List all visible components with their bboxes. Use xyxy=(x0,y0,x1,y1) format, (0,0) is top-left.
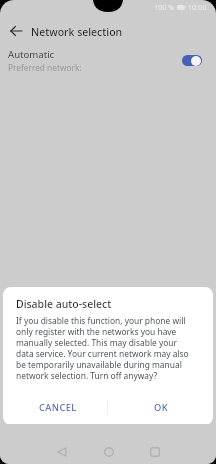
button[interactable]: Recent apps xyxy=(141,438,168,464)
staticText: 100 % xyxy=(154,2,175,12)
staticText: If you disable this function, your phone… xyxy=(16,315,196,381)
staticText: Automatic xyxy=(8,48,55,61)
staticText: Disable auto-select xyxy=(16,297,112,311)
button[interactable]: Automatic xyxy=(0,44,216,72)
button[interactable]: CANCEL xyxy=(3,392,107,422)
button[interactable]: Back xyxy=(48,438,75,464)
button[interactable]: Back xyxy=(5,20,27,42)
button[interactable]: OK xyxy=(108,392,213,422)
staticText: CANCEL xyxy=(39,401,77,414)
button[interactable]: Home xyxy=(95,438,122,464)
staticText: Preferred network: xyxy=(8,62,82,73)
staticText: OK xyxy=(154,401,168,414)
staticText: 10:00 xyxy=(188,2,207,12)
staticText: Network selection xyxy=(31,25,123,39)
